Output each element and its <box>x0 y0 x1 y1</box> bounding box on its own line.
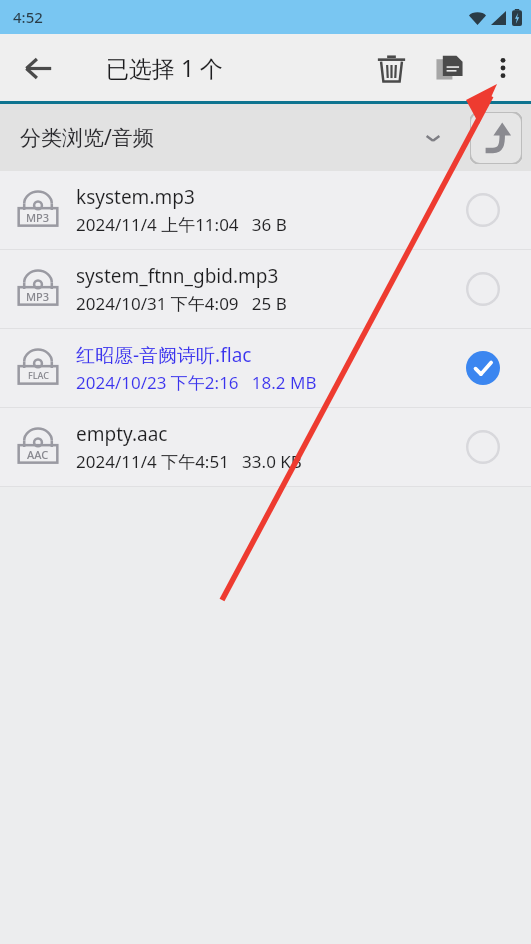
button[interactable]: AAC <box>0 408 531 486</box>
staticText: FLAC <box>28 369 49 381</box>
staticText: 已选择 1 个 <box>106 52 224 83</box>
staticText: 2024/10/31 下午4:09 25 B <box>76 292 287 315</box>
button[interactable]: 分类浏览/音频 <box>0 104 531 171</box>
button[interactable]: 更多选项 <box>478 43 528 93</box>
staticText: 4:52 <box>13 7 43 27</box>
button[interactable]: MP3 <box>0 250 531 328</box>
staticText: empty.aac <box>76 421 168 447</box>
staticText: 红昭愿-音阙诗听.flac <box>76 342 252 368</box>
staticText: 2024/11/4 上午11:04 36 B <box>76 213 287 236</box>
button[interactable]: 删除 <box>362 39 420 97</box>
button[interactable]: 返回上一级 <box>470 112 522 164</box>
button[interactable]: FLAC <box>0 329 531 407</box>
button[interactable]: MP3 <box>0 171 531 249</box>
staticText: system_ftnn_gbid.mp3 <box>76 263 279 289</box>
staticText: AAC <box>27 447 49 462</box>
staticText: MP3 <box>26 289 50 304</box>
button[interactable]: 复制 <box>420 39 478 97</box>
staticText: MP3 <box>26 210 50 225</box>
staticText: ksystem.mp3 <box>76 184 195 210</box>
staticText: 2024/11/4 下午4:51 33.0 KB <box>76 450 302 473</box>
staticText: 分类浏览/音频 <box>20 123 423 152</box>
button[interactable]: 返回 <box>11 41 65 95</box>
staticText: 2024/10/23 下午2:16 18.2 MB <box>76 371 317 394</box>
